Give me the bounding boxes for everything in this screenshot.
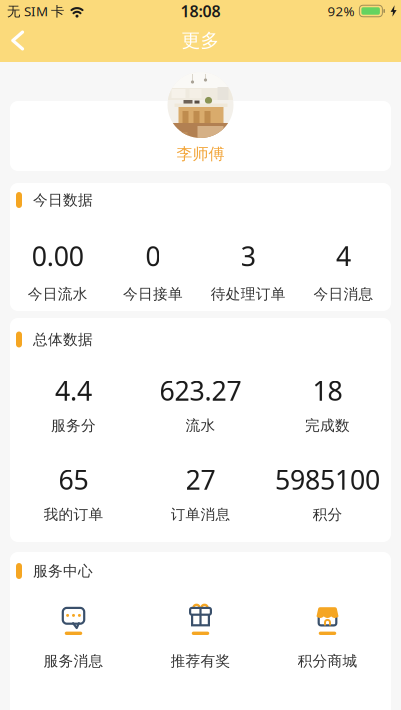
staticText: 65 bbox=[58, 462, 88, 497]
staticText: 积分商城 bbox=[297, 652, 357, 670]
staticText: 今日数据 bbox=[33, 191, 93, 209]
staticText: 推荐有奖 bbox=[170, 652, 230, 670]
staticText: 流水 bbox=[185, 416, 215, 434]
staticText: 18:08 bbox=[180, 0, 220, 22]
staticText: 4.4 bbox=[55, 373, 92, 408]
button[interactable]: Profile bbox=[167, 62, 233, 164]
staticText: 完成数 bbox=[305, 416, 350, 434]
staticText: 0.00 bbox=[32, 238, 84, 274]
button[interactable]: 积分商城 bbox=[264, 603, 391, 668]
staticText: 积分 bbox=[312, 505, 342, 523]
staticText: 待处理订单 bbox=[211, 285, 286, 303]
staticText: 总体数据 bbox=[33, 330, 93, 348]
staticText: 4 bbox=[336, 238, 351, 274]
staticText: 623.27 bbox=[159, 373, 241, 408]
staticText: 3 bbox=[241, 238, 256, 274]
staticText: 服务中心 bbox=[33, 562, 93, 580]
staticText: 服务分 bbox=[51, 416, 96, 434]
staticText: 18 bbox=[312, 373, 342, 408]
staticText: 李师傅 bbox=[176, 144, 224, 164]
staticText: 无 SIM 卡 bbox=[7, 2, 64, 20]
staticText: 今日消息 bbox=[313, 285, 373, 303]
button[interactable]: 推荐有奖 bbox=[137, 603, 264, 668]
staticText: 今日接单 bbox=[123, 285, 183, 303]
staticText: 服务消息 bbox=[43, 652, 103, 670]
staticText: 0 bbox=[145, 238, 160, 274]
staticText: 5985100 bbox=[275, 462, 380, 497]
button[interactable]: Back bbox=[0, 23, 39, 58]
staticText: 今日流水 bbox=[28, 285, 88, 303]
staticText: 订单消息 bbox=[170, 505, 230, 523]
staticText: 27 bbox=[185, 462, 215, 497]
staticText: 92% bbox=[327, 2, 354, 20]
button[interactable]: 服务消息 bbox=[10, 603, 137, 668]
staticText: 更多 bbox=[181, 29, 219, 52]
staticText: 我的订单 bbox=[43, 505, 103, 523]
